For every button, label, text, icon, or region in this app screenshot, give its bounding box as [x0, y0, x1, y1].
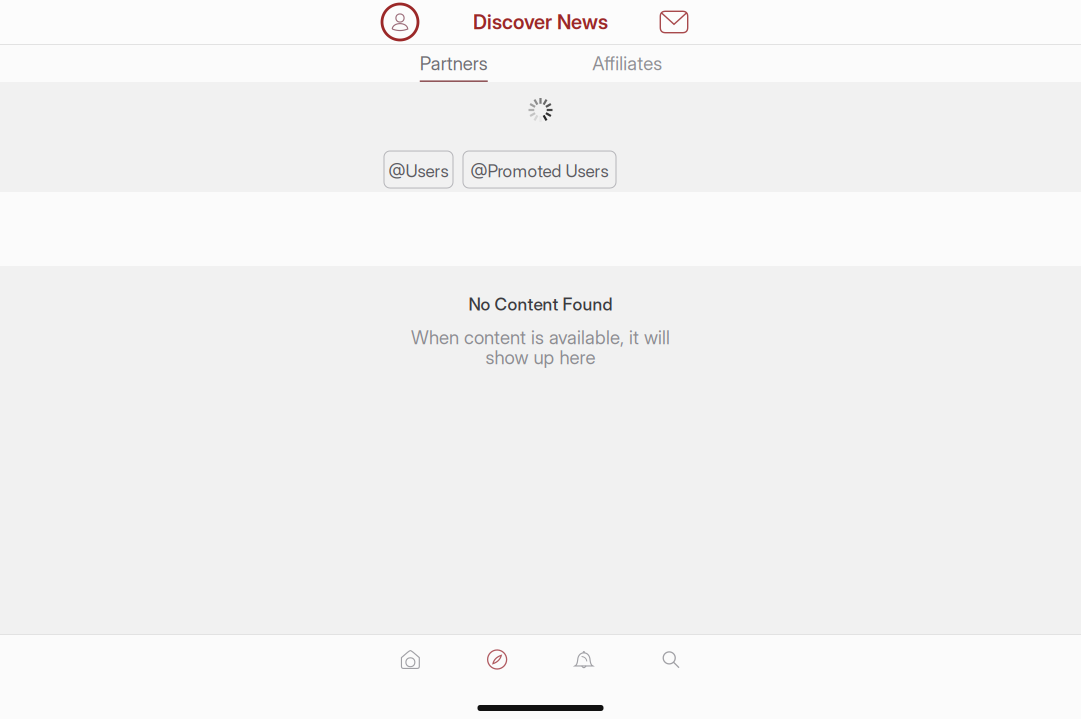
- button[interactable]: Discover: [454, 635, 541, 684]
- button[interactable]: Affiliates: [540, 44, 714, 82]
- staticText: Partners: [420, 52, 488, 74]
- button[interactable]: Partners: [367, 44, 540, 82]
- button[interactable]: Home: [367, 635, 454, 684]
- button[interactable]: Search: [627, 635, 714, 684]
- staticText: When content is available, it will: [411, 326, 670, 348]
- staticText: show up here: [485, 346, 595, 368]
- staticText: Affiliates: [592, 52, 662, 74]
- button[interactable]: @Promoted Users: [463, 151, 616, 188]
- button[interactable]: Messages: [652, 0, 696, 44]
- staticText: Discover News: [473, 10, 608, 34]
- button[interactable]: @Users: [384, 151, 453, 188]
- button[interactable]: Profile: [378, 0, 422, 44]
- staticText: No Content Found: [468, 294, 612, 314]
- button[interactable]: Notifications: [540, 635, 627, 684]
- staticText: @Promoted Users: [470, 161, 608, 181]
- staticText: @Users: [388, 161, 448, 181]
